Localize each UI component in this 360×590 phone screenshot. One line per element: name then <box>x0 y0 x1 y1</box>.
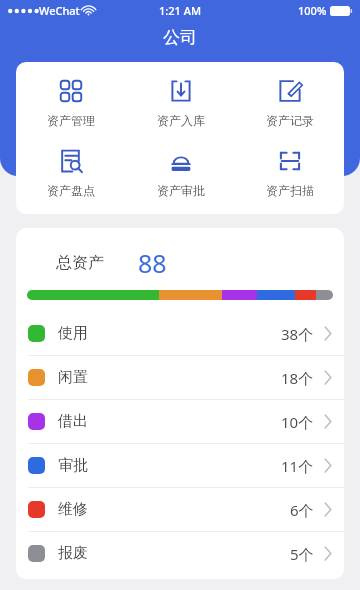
button[interactable]: 使用 <box>16 312 344 355</box>
button[interactable]: 报废 <box>16 532 344 575</box>
button[interactable]: 借出 <box>16 400 344 443</box>
staticText: 资产扫描 <box>266 183 314 198</box>
staticText: 资产盘点 <box>47 183 95 198</box>
staticText: 资产记录 <box>266 113 314 128</box>
button[interactable]: 资产扫描 <box>235 146 344 200</box>
button[interactable]: 闲置 <box>16 356 344 399</box>
button[interactable]: 资产管理 <box>16 76 126 130</box>
staticText: 闲置 <box>58 368 88 387</box>
staticText: 使用 <box>58 324 88 343</box>
staticText: 38个 <box>281 324 314 344</box>
staticText: 100% <box>298 3 327 18</box>
button[interactable]: 资产审批 <box>126 146 235 200</box>
button[interactable]: 审批 <box>16 444 344 487</box>
staticText: 借出 <box>58 412 88 431</box>
staticText: 18个 <box>281 368 314 388</box>
button[interactable]: 资产入库 <box>126 76 235 130</box>
staticText: 资产管理 <box>47 113 95 128</box>
staticText: 10个 <box>281 412 314 432</box>
staticText: 公司 <box>163 27 197 48</box>
button[interactable]: 维修 <box>16 488 344 531</box>
button[interactable]: 资产盘点 <box>16 146 126 200</box>
button[interactable]: 资产记录 <box>235 76 344 130</box>
staticText: 资产入库 <box>157 113 205 128</box>
staticText: 6个 <box>290 500 314 520</box>
staticText: 报废 <box>58 544 88 563</box>
staticText: 维修 <box>58 500 88 519</box>
staticText: 审批 <box>58 456 88 475</box>
staticText: 88 <box>138 246 167 280</box>
staticText: 资产审批 <box>157 183 205 198</box>
staticText: 总资产 <box>56 253 104 273</box>
staticText: WeChat <box>39 3 80 18</box>
staticText: 1:21 AM <box>159 3 202 18</box>
staticText: 5个 <box>290 544 314 564</box>
staticText: 11个 <box>281 456 314 476</box>
